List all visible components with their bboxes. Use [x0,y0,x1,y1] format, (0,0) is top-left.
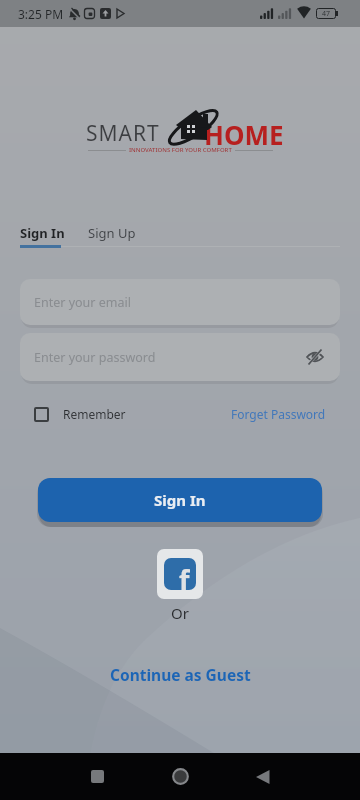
staticText: Sign In [154,490,206,510]
staticText: Sign Up [88,224,136,242]
button[interactable]: Forget Password [231,406,326,422]
button[interactable] [34,407,49,422]
staticText: 3:25 PM [18,6,64,22]
button[interactable]: Sign In [20,224,65,242]
button[interactable] [156,753,204,800]
button[interactable]: Continue as Guest [110,664,251,685]
staticText: f [179,561,190,590]
button[interactable] [239,753,287,800]
button[interactable]: Sign Up [88,224,136,242]
button[interactable]: Enter your email [20,279,340,325]
staticText: 47 [322,9,331,19]
button[interactable] [73,753,121,800]
staticText: Enter your email [34,294,131,311]
staticText: Or [171,603,189,623]
staticText: Enter your password [34,349,156,366]
staticText: Remember [63,406,126,422]
staticText: INNOVATIONS FOR YOUR COMFORT [129,146,232,154]
staticText: SMART [86,119,160,148]
button[interactable]: Enter your password [20,333,340,381]
staticText: HOME [204,117,284,152]
button[interactable]: Sign In [38,478,322,522]
button[interactable]: f [157,549,203,599]
staticText: Sign In [20,224,65,242]
